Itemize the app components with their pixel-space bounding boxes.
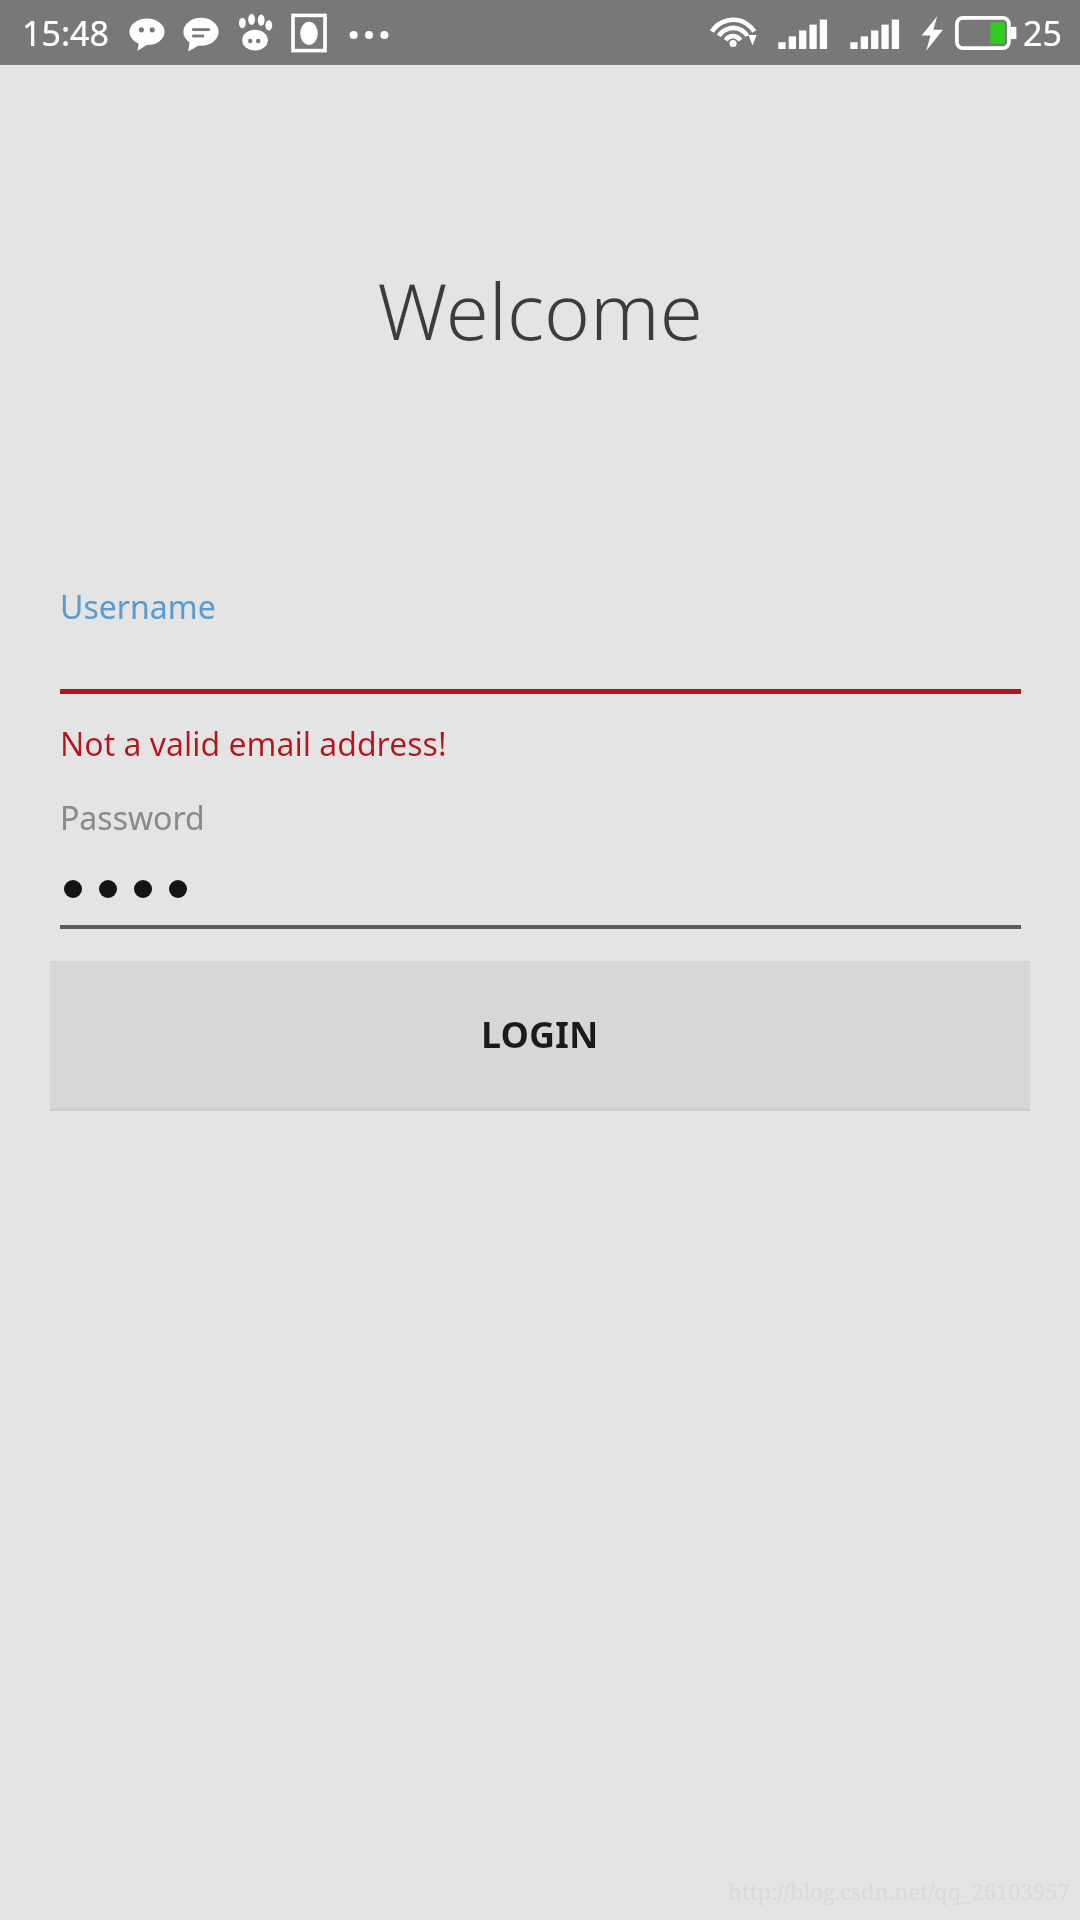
button[interactable]: Password <box>60 796 1021 929</box>
staticText: Not a valid email address! <box>60 722 447 766</box>
staticText: 25 <box>1023 10 1062 56</box>
staticText: 15:48 <box>22 10 109 56</box>
staticText: LOGIN <box>481 1010 599 1059</box>
staticText: Username <box>60 585 216 629</box>
staticText: Welcome <box>377 257 703 363</box>
button[interactable]: Username <box>60 585 1021 694</box>
staticText: http://blog.csdn.net/qq_26103957 <box>728 1876 1070 1906</box>
button[interactable]: LOGIN <box>50 961 1030 1107</box>
staticText: Password <box>60 796 205 840</box>
